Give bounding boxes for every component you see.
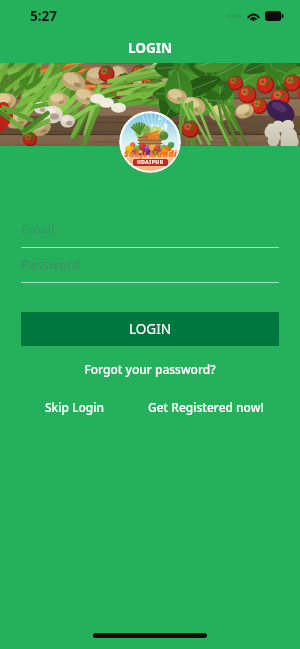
staticText: Sabji Mandi bbox=[124, 147, 177, 159]
staticText: Skip Login bbox=[45, 399, 105, 415]
button[interactable]: Email bbox=[21, 220, 279, 248]
staticText: Password bbox=[21, 255, 80, 273]
button[interactable]: Forgot your password? bbox=[0, 361, 300, 377]
staticText: Email bbox=[21, 220, 55, 238]
button[interactable]: Skip Login bbox=[45, 399, 105, 415]
staticText: 5:27 bbox=[30, 7, 57, 25]
staticText: UDAIPUR bbox=[137, 159, 164, 166]
staticText: Get Registered now! bbox=[148, 399, 264, 415]
staticText: Forgot your password? bbox=[84, 361, 216, 377]
button[interactable]: Get Registered now! bbox=[148, 399, 264, 415]
button[interactable]: Password bbox=[21, 255, 279, 283]
staticText: LOGIN bbox=[128, 39, 172, 57]
button[interactable]: LOGIN bbox=[21, 312, 279, 346]
staticText: LOGIN bbox=[129, 320, 172, 338]
